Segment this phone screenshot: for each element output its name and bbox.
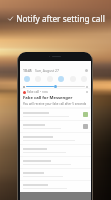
staticText: • now (40, 90, 48, 94)
button[interactable]: Fake call (21, 89, 90, 107)
staticText: Fake call (27, 90, 39, 94)
button[interactable] (20, 133, 91, 144)
button[interactable] (20, 181, 91, 192)
button[interactable]: Quick toggle 4 (70, 76, 76, 82)
button[interactable]: Quick toggle 2 (47, 76, 53, 82)
button[interactable]: Settings (85, 69, 88, 72)
button[interactable] (20, 121, 91, 132)
staticText: 10:45 (23, 68, 32, 73)
button[interactable]: Quick toggle 5 (81, 76, 87, 82)
button[interactable] (20, 109, 91, 120)
staticText: Notify after setting call (16, 13, 105, 24)
staticText: Fake call for Messenger (23, 95, 73, 101)
staticText: Sun, August 27 (35, 68, 59, 73)
staticText: You will receive your fake call after 5 … (23, 102, 87, 106)
button[interactable]: Quick toggle 3 (58, 76, 64, 82)
button[interactable] (20, 169, 91, 180)
button[interactable] (20, 157, 91, 168)
button[interactable] (20, 145, 91, 156)
button[interactable]: Quick toggle 1 (35, 76, 41, 82)
button[interactable]: Quick toggle 0 (24, 76, 30, 82)
